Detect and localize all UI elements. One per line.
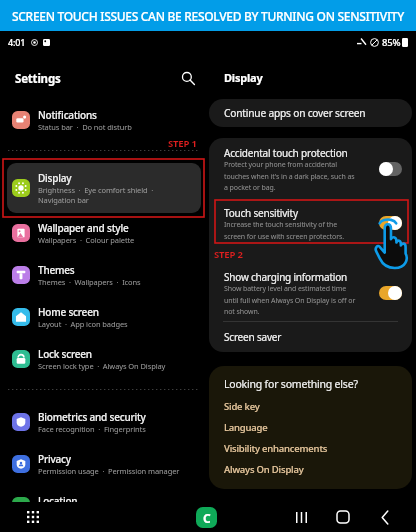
staticText: Notifications xyxy=(38,108,97,122)
staticText: Wallpapers · Colour palette xyxy=(38,235,135,245)
staticText: Location requests · Location services xyxy=(38,508,167,518)
staticText: Biometrics and security xyxy=(38,410,146,424)
staticText: Display xyxy=(224,70,263,85)
button[interactable]: Wallpaper and style xyxy=(0,213,208,253)
button[interactable]: Search xyxy=(177,67,199,89)
staticText: Show battery level and estimated time un… xyxy=(224,284,358,316)
button[interactable]: Always On Display xyxy=(224,463,304,476)
button[interactable]: Recents xyxy=(288,504,314,530)
staticText: Display xyxy=(38,171,72,185)
button[interactable]: Home xyxy=(330,504,356,530)
staticText: 4:01 xyxy=(8,36,26,48)
button[interactable]: Continue apps on cover screen xyxy=(209,99,412,127)
button[interactable]: Toggle xyxy=(379,286,402,300)
button[interactable]: Shopping app xyxy=(196,507,217,528)
button[interactable]: Show charging information xyxy=(209,262,412,324)
button[interactable]: Accidental touch protection xyxy=(209,138,412,200)
staticText: Continue apps on cover screen xyxy=(224,106,366,120)
staticText: Home screen xyxy=(38,305,99,319)
staticText: Themes · Wallpapers · Icons xyxy=(38,277,141,287)
button[interactable]: Privacy xyxy=(0,444,208,484)
button[interactable]: Apps xyxy=(22,506,44,528)
staticText: STEP 1 xyxy=(168,137,197,150)
staticText: Themes xyxy=(38,263,75,277)
button[interactable]: Touch sensitivity xyxy=(209,197,412,249)
staticText: Privacy xyxy=(38,452,71,466)
button[interactable]: Toggle xyxy=(379,162,402,176)
button[interactable]: Lock screen xyxy=(0,339,208,379)
staticText: 85% xyxy=(382,36,401,49)
staticText: Brightness · Eye comfort shield · xyxy=(38,185,154,195)
staticText: Protect your phone from accidental touch… xyxy=(224,160,358,192)
button[interactable]: Location xyxy=(0,486,208,526)
button[interactable]: Side key xyxy=(224,400,260,413)
button[interactable]: Screen saver xyxy=(209,322,412,352)
staticText: Navigation bar xyxy=(38,195,89,205)
staticText: Location xyxy=(38,494,78,508)
staticText: SCREEN TOUCH ISSUES CAN BE RESOLVED BY T… xyxy=(12,8,404,24)
staticText: Looking for something else? xyxy=(224,377,358,391)
staticText: Permission usage · Permission manager xyxy=(38,466,180,476)
button[interactable]: Themes xyxy=(0,255,208,295)
staticText: Increase the touch sensitivity of the sc… xyxy=(224,220,358,241)
button[interactable]: Back xyxy=(372,504,398,530)
staticText: Face recognition · Fingerprints xyxy=(38,424,146,434)
button[interactable]: Biometrics and security xyxy=(0,402,208,442)
button[interactable]: Home screen xyxy=(0,297,208,337)
staticText: Layout · App icon badges xyxy=(38,319,128,329)
staticText: Settings xyxy=(15,71,61,87)
button[interactable]: Toggle xyxy=(379,216,402,230)
staticText: STEP 2 xyxy=(214,248,243,261)
staticText: C xyxy=(203,510,211,526)
button[interactable]: Visibility enhancements xyxy=(224,442,328,455)
staticText: Lock screen xyxy=(38,347,92,361)
staticText: Screen lock type · Always On Display xyxy=(38,361,166,371)
button[interactable]: Display xyxy=(7,163,201,213)
staticText: Wallpaper and style xyxy=(38,221,129,235)
staticText: Status bar · Do not disturb xyxy=(38,122,132,132)
staticText: Touch sensitivity xyxy=(224,206,298,220)
button[interactable]: Notifications xyxy=(0,100,208,140)
button[interactable]: Language xyxy=(224,421,268,434)
staticText: Accidental touch protection xyxy=(224,146,348,160)
staticText: Screen saver xyxy=(224,330,282,344)
staticText: Show charging information xyxy=(224,270,348,284)
